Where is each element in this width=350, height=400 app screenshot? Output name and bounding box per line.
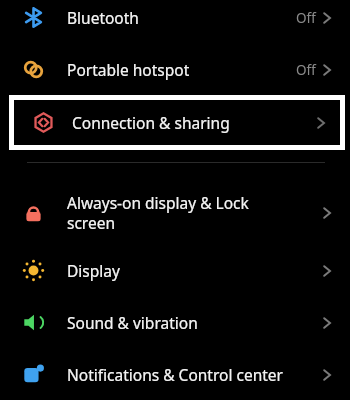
- button[interactable]: Connection and sharing: [14, 100, 340, 145]
- button[interactable]: Notifications and Control center: [0, 357, 350, 392]
- other: Sound and vibration: [0, 311, 67, 334]
- button[interactable]: Bluetooth: [0, 0, 350, 35]
- button[interactable]: Always-on display and Lock screen: [0, 189, 350, 237]
- staticText: Off: [296, 61, 316, 79]
- other: Portable hotspot: [0, 58, 67, 81]
- button[interactable]: Portable hotspot: [0, 52, 350, 87]
- staticText: Off: [296, 9, 316, 27]
- staticText: Notifications & Control center: [67, 364, 283, 385]
- button[interactable]: Display: [0, 253, 350, 288]
- staticText: Always-on display & Lock screen: [67, 192, 252, 234]
- other: Connection and sharing: [14, 111, 72, 134]
- other: Notifications and Control center: [0, 363, 67, 386]
- other: Bluetooth: [0, 6, 67, 29]
- button[interactable]: Sound and vibration: [0, 305, 350, 340]
- other: Display: [0, 259, 67, 282]
- other: Always-on display and Lock screen: [0, 202, 67, 225]
- staticText: Portable hotspot: [67, 59, 190, 80]
- staticText: Display: [67, 260, 120, 281]
- staticText: Connection & sharing: [72, 112, 230, 133]
- staticText: Sound & vibration: [67, 312, 198, 333]
- staticText: Bluetooth: [67, 7, 139, 28]
